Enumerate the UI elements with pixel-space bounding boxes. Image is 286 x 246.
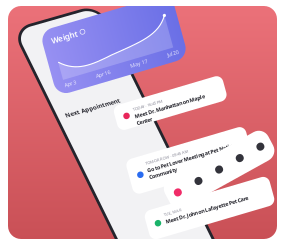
button[interactable]: Tab 2 bbox=[55, 6, 79, 38]
staticText: Meet Dr. John on Lafayette Pet Care bbox=[27, 18, 113, 25]
staticText: Apr 3 bbox=[18, 61, 30, 68]
staticText: Go to Pet Lover Meeting at Pet Nation Co… bbox=[27, 18, 119, 32]
button[interactable]: Tab 0 bbox=[8, 6, 32, 38]
staticText: Jul 20 bbox=[125, 61, 137, 68]
button[interactable]: TUE, MAR bbox=[8, 6, 138, 36]
button[interactable]: TOMORROW · 09:45 AM bbox=[8, 6, 133, 42]
button[interactable]: Tab 1 bbox=[32, 6, 55, 38]
staticText: Next Appointment bbox=[26, 174, 126, 188]
staticText: TOMORROW · 09:45 AM bbox=[27, 12, 72, 17]
staticText: Weight bbox=[17, 13, 44, 24]
button[interactable]: Tab 3 bbox=[79, 6, 102, 38]
staticText: May 17 bbox=[86, 61, 104, 68]
staticText: Apr 16 bbox=[51, 61, 66, 68]
staticText: Meet Dr. Manhattan on Maple Center bbox=[27, 18, 100, 32]
button[interactable]: Tab 4 bbox=[102, 6, 126, 38]
button[interactable]: TODAY · 16:45 PM bbox=[8, 6, 122, 32]
staticText: TODAY · 16:45 PM bbox=[27, 12, 58, 17]
